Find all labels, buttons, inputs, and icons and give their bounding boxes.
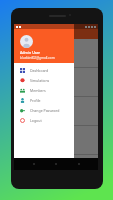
staticText: Updated recently xyxy=(18,80,44,84)
staticText: Admin User xyxy=(20,50,41,55)
button[interactable]: Home xyxy=(53,161,59,167)
staticText: Simulation 01 xyxy=(18,44,42,49)
button[interactable]: Logout xyxy=(14,115,74,125)
staticText: Dashboard xyxy=(26,31,48,37)
staticText: Simulation 03 xyxy=(18,102,42,107)
button[interactable]: Simulations xyxy=(14,75,74,85)
button[interactable]: Members xyxy=(14,85,74,95)
staticText: Members xyxy=(30,88,46,93)
staticText: Simulations xyxy=(30,78,50,83)
staticText: bluebird02@gmail.com xyxy=(20,56,55,60)
button[interactable]: Recents xyxy=(76,161,82,167)
staticText: Change Password xyxy=(30,108,60,113)
button[interactable]: Simulation 05 xyxy=(14,155,98,158)
button[interactable]: Dashboard xyxy=(14,65,74,75)
button[interactable]: Simulation 04 xyxy=(14,126,98,154)
staticText: Updated recently xyxy=(18,109,44,113)
staticText: Updated recently xyxy=(18,51,44,55)
button[interactable]: Change Password xyxy=(14,105,74,115)
button[interactable]: Simulation 01 xyxy=(14,39,98,67)
button[interactable]: Profile xyxy=(14,95,74,105)
staticText: Logout xyxy=(30,118,42,123)
button[interactable]: Back xyxy=(31,161,37,167)
staticText: Profile xyxy=(30,98,41,103)
button[interactable]: Simulation 03 xyxy=(14,97,98,125)
staticText: Dashboard xyxy=(30,68,49,73)
button[interactable]: Simulation 02 xyxy=(14,68,98,96)
